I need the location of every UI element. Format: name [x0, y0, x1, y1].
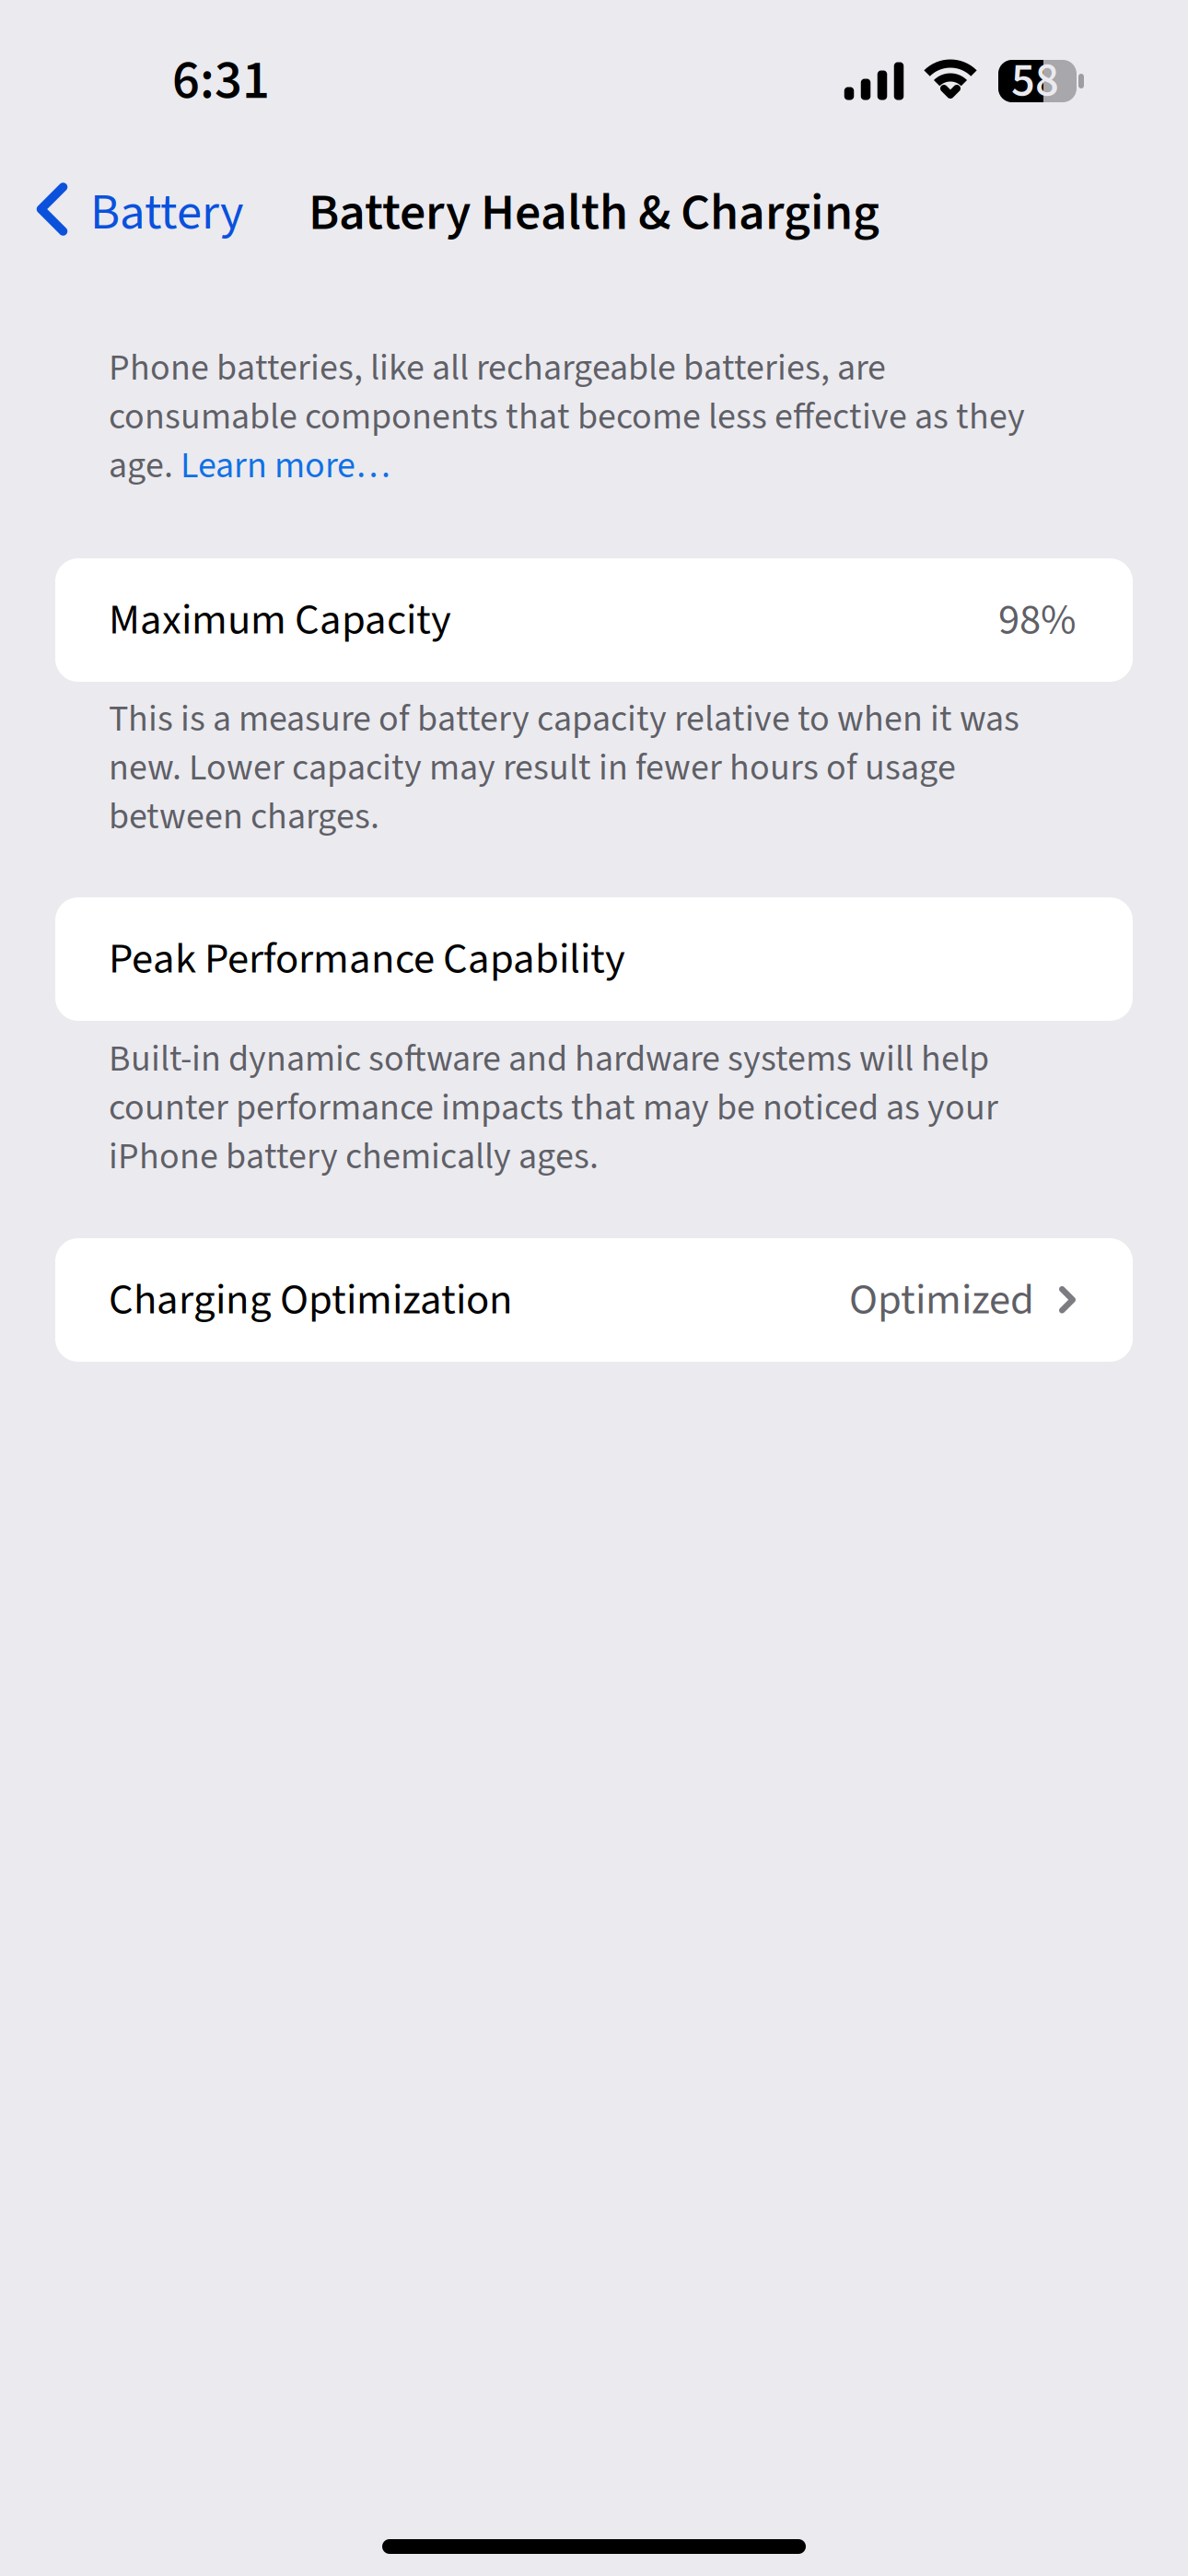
button[interactable]: Charging Optimization: [55, 1238, 1133, 1362]
staticText: 58: [1011, 48, 1059, 114]
staticText: new. Lower capacity may result in fewer …: [109, 742, 956, 794]
staticText: Phone batteries, like all rechargeable b…: [109, 342, 886, 394]
staticText: iPhone battery chemically ages.: [109, 1130, 599, 1183]
button[interactable]: Battery: [0, 161, 266, 264]
staticText: age.: [109, 439, 181, 492]
button[interactable]: Learn more…: [181, 439, 390, 492]
button[interactable]: Peak Performance Capability: [55, 897, 1133, 1021]
staticText: Maximum Capacity: [109, 589, 451, 651]
staticText: consumable components that become less e…: [109, 391, 1025, 443]
staticText: counter performance impacts that may be …: [109, 1082, 998, 1134]
staticText: 6:31: [172, 43, 270, 119]
staticText: Optimized: [849, 1269, 1034, 1331]
staticText: Battery: [90, 177, 244, 249]
staticText: Peak Performance Capability: [109, 929, 625, 990]
staticText: between charges.: [109, 790, 379, 843]
staticText: Learn more…: [181, 439, 390, 492]
staticText: Built-in dynamic software and hardware s…: [109, 1033, 989, 1085]
staticText: Battery Health & Charging: [309, 176, 879, 249]
staticText: This is a measure of battery capacity re…: [109, 693, 1019, 745]
staticText: Charging Optimization: [109, 1269, 513, 1331]
staticText: 98%: [998, 589, 1076, 651]
